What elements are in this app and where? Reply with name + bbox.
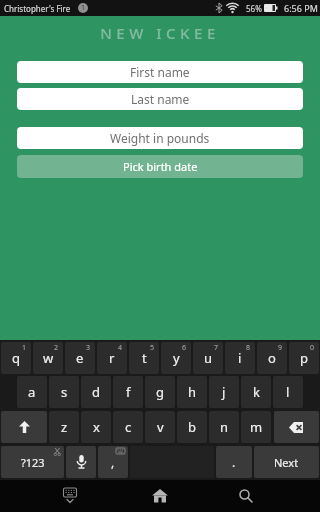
button[interactable]: v — [145, 411, 175, 443]
staticText: i — [238, 349, 242, 367]
button[interactable]: l — [273, 376, 303, 408]
staticText: 4 — [118, 343, 123, 353]
staticText: 1 — [22, 343, 27, 353]
staticText: l — [286, 383, 290, 401]
button[interactable]: n — [209, 411, 239, 443]
staticText: 9 — [278, 343, 283, 353]
staticText: w — [43, 349, 54, 367]
button[interactable]: f — [113, 376, 143, 408]
staticText: , — [111, 454, 115, 470]
button[interactable]: g — [145, 376, 175, 408]
button[interactable] — [66, 446, 96, 478]
staticText: 6 — [182, 343, 187, 353]
staticText: j — [222, 383, 226, 401]
button[interactable]: w — [33, 342, 63, 374]
staticText: Next — [274, 455, 299, 470]
staticText: e — [76, 349, 84, 367]
staticText: s — [61, 383, 68, 401]
staticText: 56% — [246, 3, 262, 14]
button[interactable]: x — [81, 411, 111, 443]
button[interactable]: z — [49, 411, 79, 443]
button[interactable]: Last name — [17, 88, 303, 110]
staticText: u — [204, 349, 213, 367]
button[interactable]: o — [257, 342, 287, 374]
staticText: ?123 — [21, 455, 45, 470]
staticText: z — [61, 418, 68, 436]
staticText: 7 — [214, 343, 219, 353]
button[interactable]: Pick birth date — [17, 155, 303, 178]
button[interactable] — [232, 482, 260, 510]
button[interactable]: c — [113, 411, 143, 443]
button[interactable]: b — [177, 411, 207, 443]
button[interactable] — [274, 411, 319, 443]
button[interactable]: y — [161, 342, 191, 374]
button[interactable]: q — [1, 342, 31, 374]
button[interactable]: Next — [254, 446, 319, 478]
button[interactable]: Weight in pounds — [17, 127, 303, 149]
staticText: y — [173, 349, 180, 367]
staticText: c — [125, 418, 132, 436]
staticText: n — [220, 418, 229, 436]
staticText: Weight in pounds — [110, 130, 210, 146]
staticText: o — [268, 349, 276, 367]
staticText: h — [188, 383, 197, 401]
button[interactable]: , — [98, 446, 128, 478]
button[interactable] — [146, 482, 174, 510]
staticText: 1 — [81, 3, 86, 13]
staticText: 2 — [54, 343, 59, 353]
button[interactable]: r — [97, 342, 127, 374]
button[interactable]: h — [177, 376, 207, 408]
staticText: p — [300, 349, 308, 367]
staticText: x — [93, 418, 100, 436]
staticText: 6:56 PM — [284, 2, 318, 14]
staticText: r — [109, 349, 115, 367]
staticText: k — [253, 383, 260, 401]
staticText: Christopher's Fire — [4, 3, 71, 14]
staticText: t — [142, 349, 147, 367]
staticText: . — [232, 454, 236, 470]
staticText: 5 — [150, 343, 155, 353]
button[interactable] — [56, 482, 84, 510]
staticText: b — [188, 418, 196, 436]
button[interactable] — [1, 411, 47, 443]
staticText: a — [28, 383, 36, 401]
button[interactable]: m — [241, 411, 271, 443]
staticText: 8 — [246, 343, 251, 353]
staticText: v — [157, 418, 164, 436]
staticText: Last name — [131, 91, 190, 107]
button[interactable]: First name — [17, 61, 303, 83]
button[interactable]: k — [241, 376, 271, 408]
staticText: f — [126, 383, 131, 401]
staticText: 3 — [86, 343, 91, 353]
button[interactable]: p — [289, 342, 319, 374]
staticText: Pick birth date — [123, 159, 198, 174]
staticText: NEW ICKEE — [0, 23, 320, 43]
staticText: m — [250, 418, 263, 436]
button[interactable]: ?123 — [1, 446, 64, 478]
button[interactable]: i — [225, 342, 255, 374]
staticText: q — [12, 349, 20, 367]
staticText: d — [92, 383, 100, 401]
staticText: g — [156, 383, 164, 401]
button[interactable]: e — [65, 342, 95, 374]
button[interactable]: t — [129, 342, 159, 374]
button[interactable]: a — [17, 376, 47, 408]
button[interactable]: j — [209, 376, 239, 408]
staticText: 0 — [310, 343, 315, 353]
button[interactable]: . — [216, 446, 252, 478]
button[interactable]: d — [81, 376, 111, 408]
button[interactable]: u — [193, 342, 223, 374]
button[interactable]: s — [49, 376, 79, 408]
staticText: First name — [130, 64, 190, 80]
